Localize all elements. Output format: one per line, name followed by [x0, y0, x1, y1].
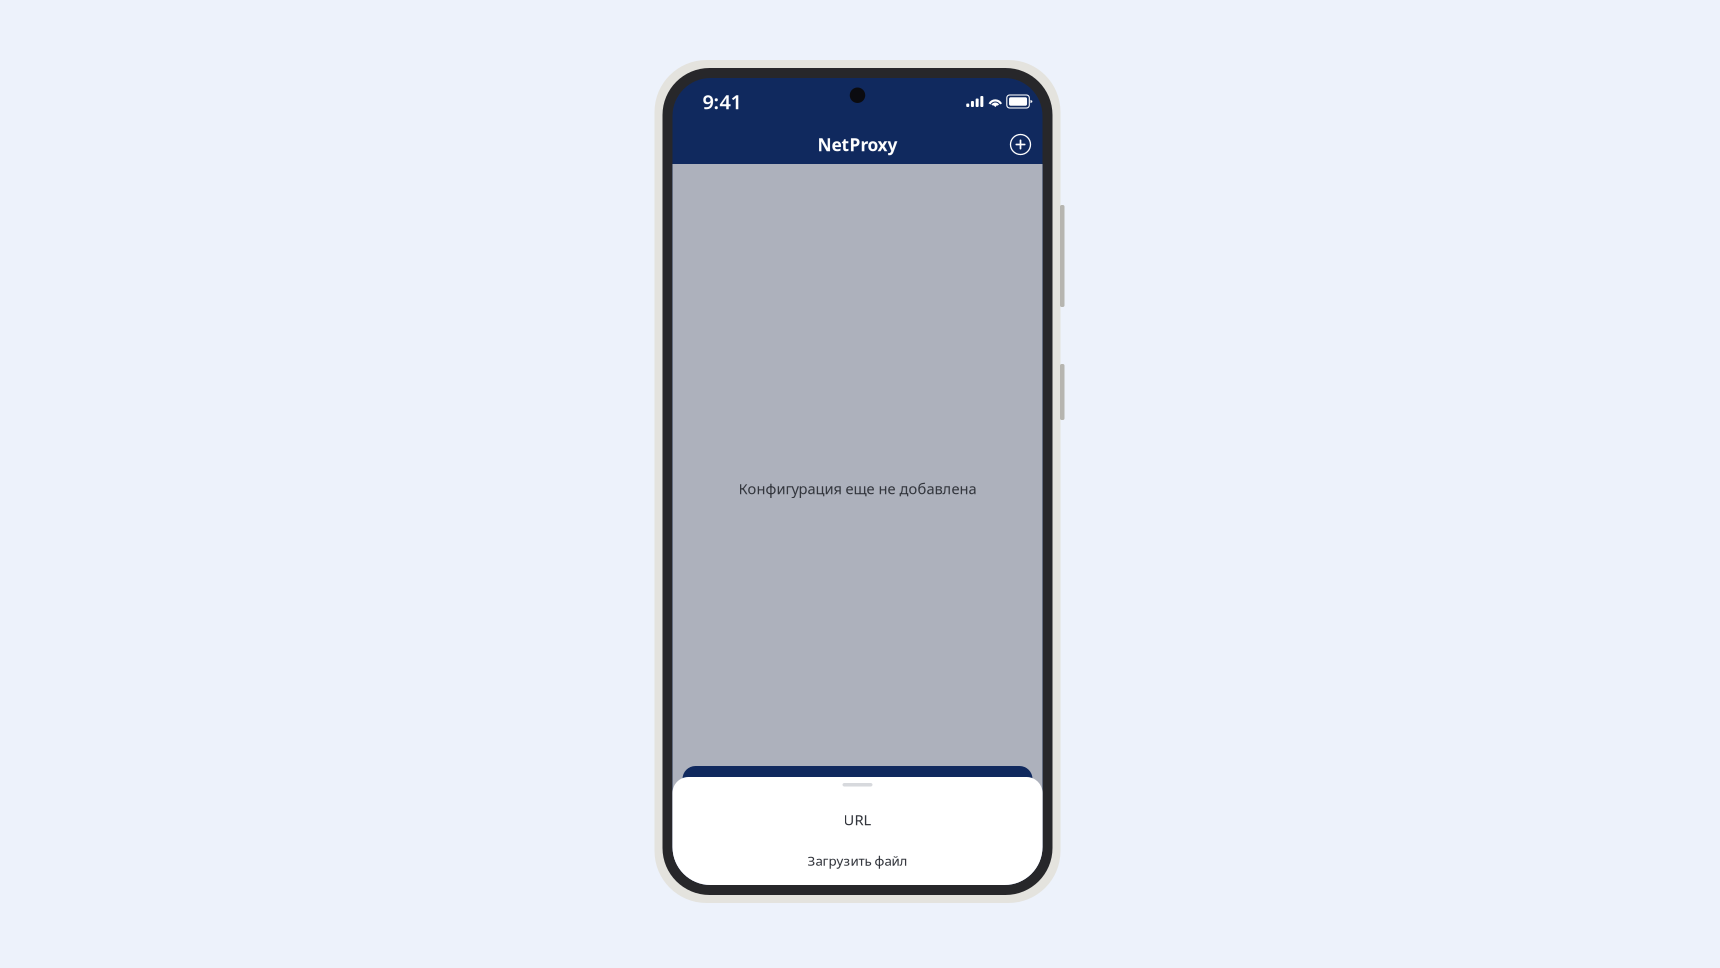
button[interactable]: URL: [672, 808, 1042, 830]
staticText: NetProxy: [817, 133, 897, 156]
button[interactable]: Add configuration: [1004, 128, 1036, 160]
staticText: 9:41: [702, 88, 741, 115]
button[interactable]: Загрузить файл: [672, 849, 1042, 871]
staticText: URL: [843, 810, 871, 829]
staticText: Загрузить файл: [807, 852, 907, 869]
staticText: Конфигурация еще не добавлена: [738, 479, 976, 498]
